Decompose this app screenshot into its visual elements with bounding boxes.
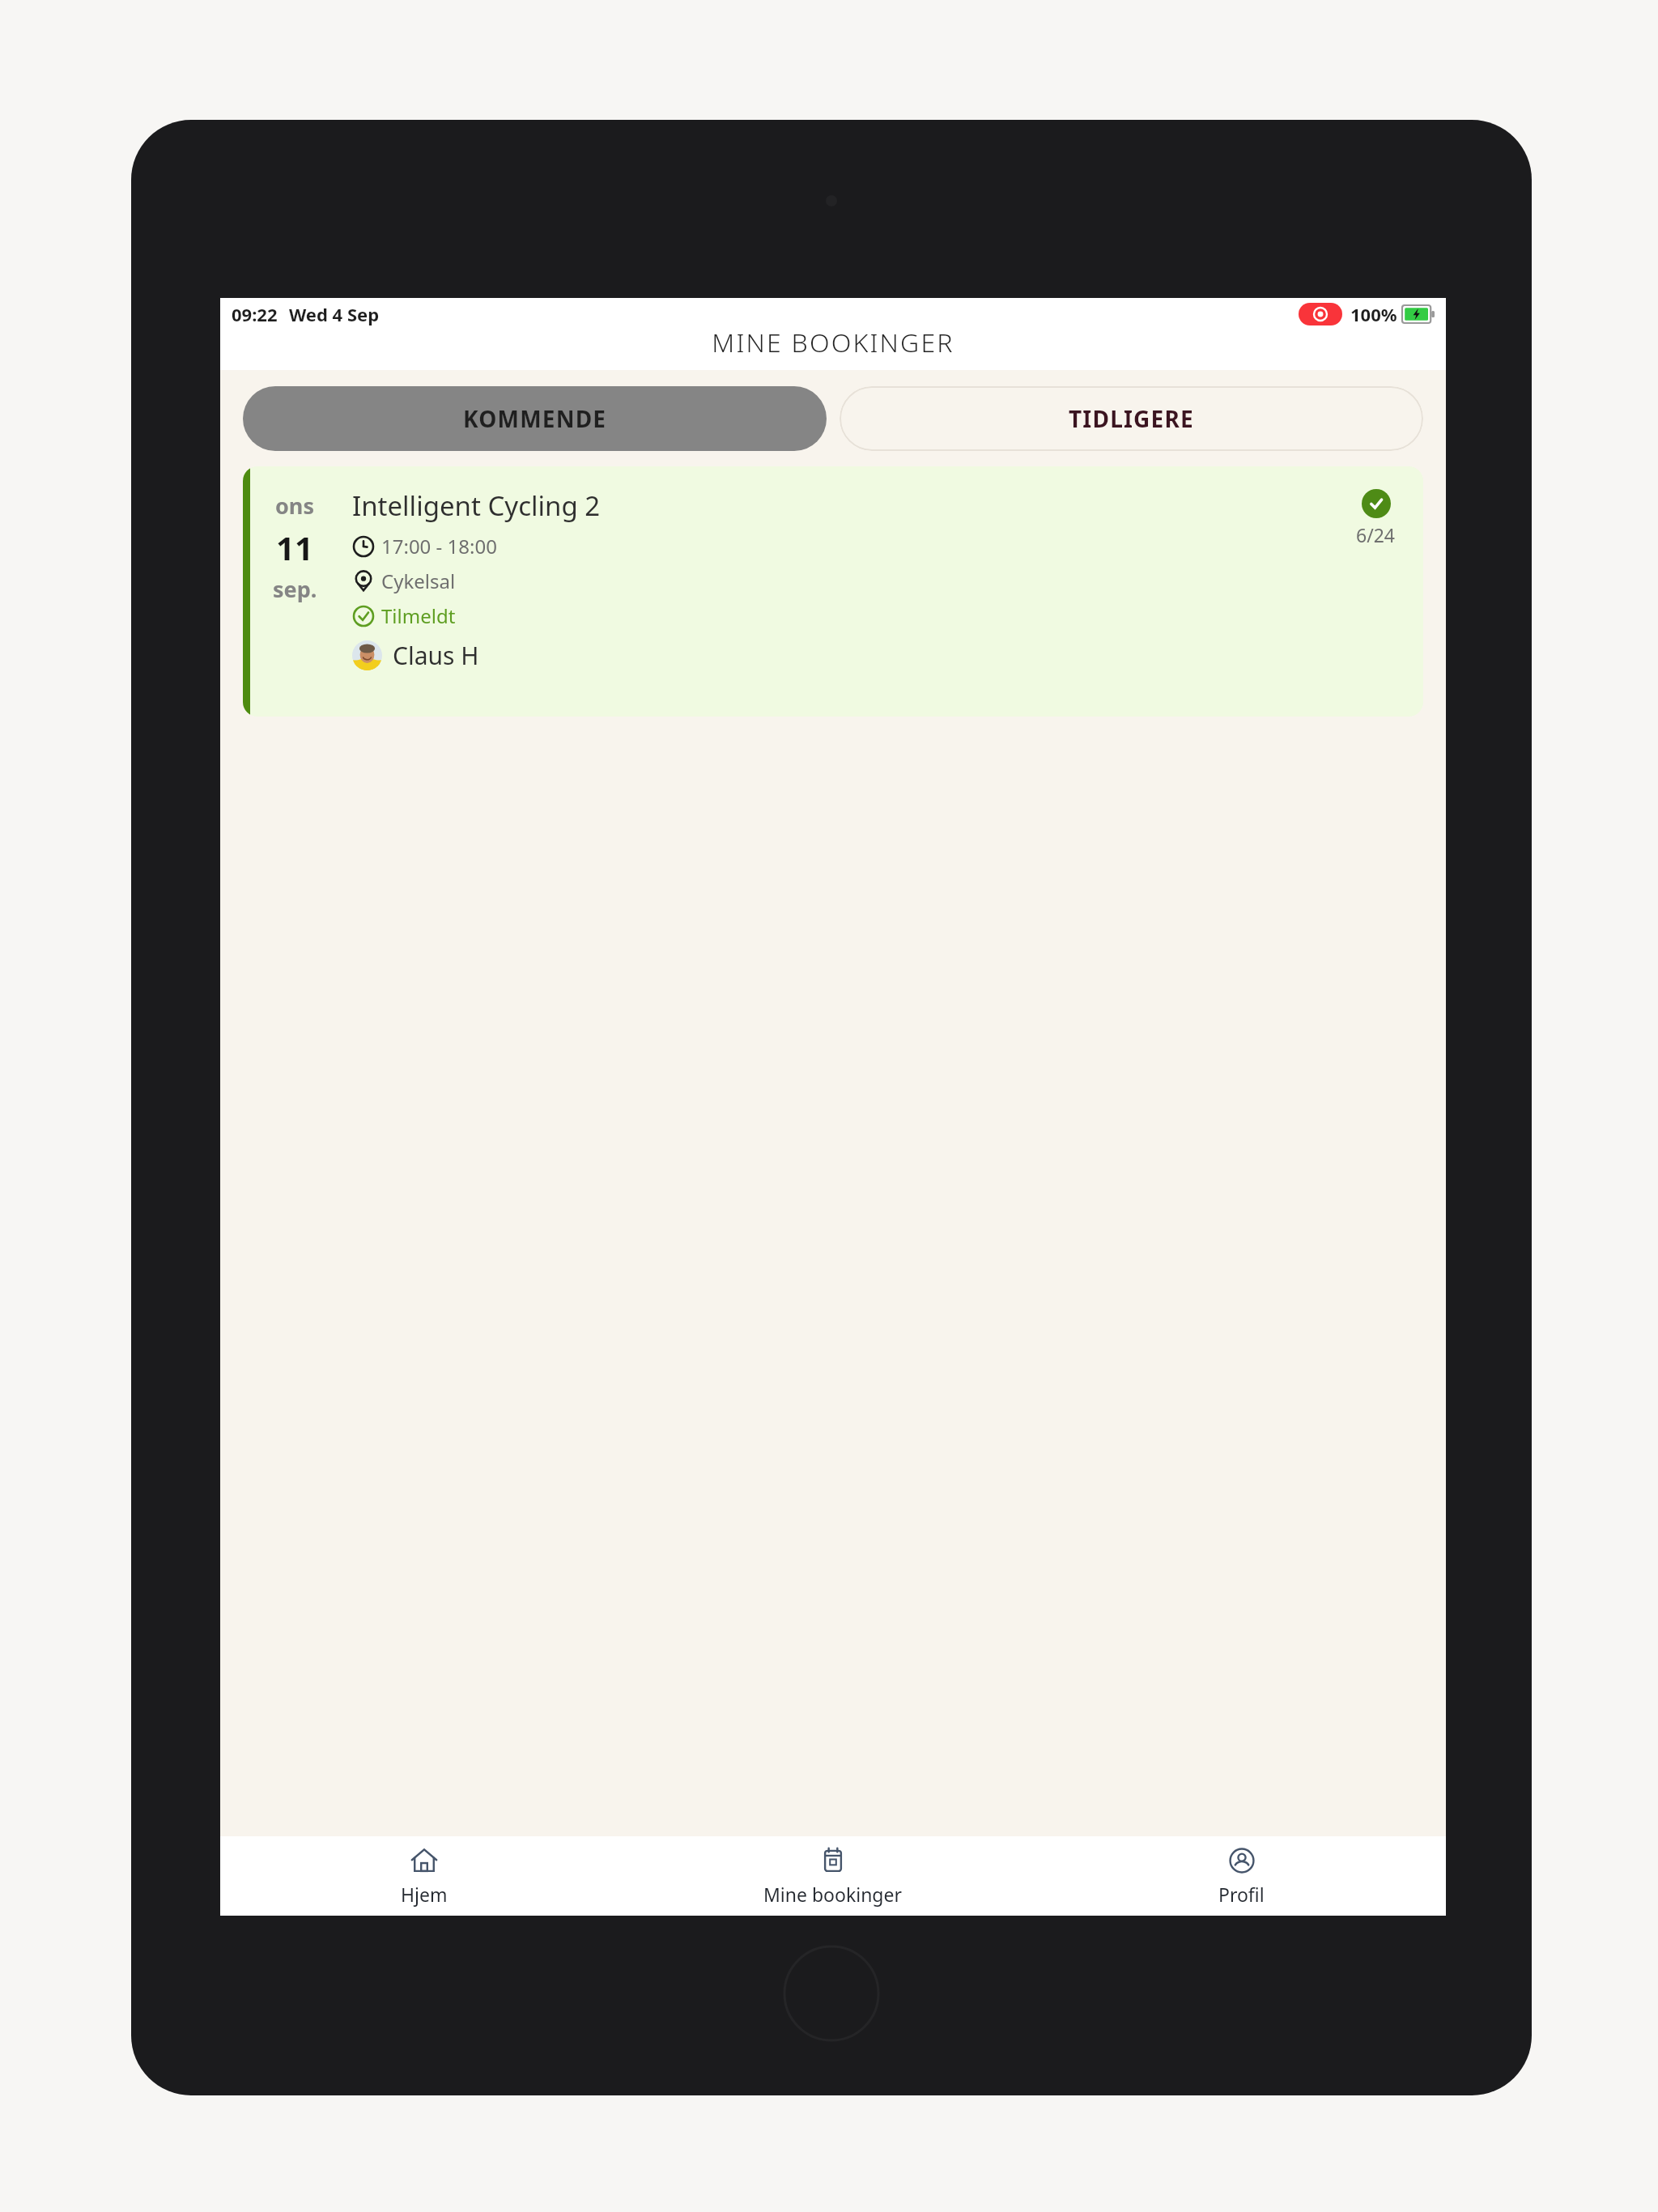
staticText: Tilmeldt xyxy=(381,602,456,629)
button[interactable]: TIDLIGERE xyxy=(840,386,1423,451)
staticText: 09:22 xyxy=(232,302,278,326)
staticText: sep. xyxy=(273,574,317,604)
staticText: Wed 4 Sep xyxy=(289,302,380,326)
staticText: KOMMENDE xyxy=(463,403,607,434)
staticText: ons xyxy=(275,491,314,521)
button[interactable]: ons xyxy=(243,466,1423,717)
staticText: TIDLIGERE xyxy=(1069,403,1194,434)
button[interactable]: KOMMENDE xyxy=(243,386,827,451)
staticText: MINE BOOKINGER xyxy=(712,325,954,360)
button[interactable]: Hjem xyxy=(220,1836,628,1916)
staticText: 17:00 - 18:00 xyxy=(381,533,497,559)
button[interactable]: Mine bookinger xyxy=(628,1836,1037,1916)
staticText: Intelligent Cycling 2 xyxy=(352,487,601,524)
staticText: Claus H xyxy=(393,639,479,672)
button[interactable]: Profil xyxy=(1037,1836,1446,1916)
staticText: Profil xyxy=(1218,1882,1265,1907)
staticText: 6/24 xyxy=(1356,522,1396,547)
staticText: Hjem xyxy=(401,1882,448,1907)
staticText: Mine bookinger xyxy=(763,1882,902,1907)
staticText: 11 xyxy=(276,525,313,569)
staticText: 100% xyxy=(1350,302,1397,326)
staticText: Cykelsal xyxy=(381,568,456,594)
